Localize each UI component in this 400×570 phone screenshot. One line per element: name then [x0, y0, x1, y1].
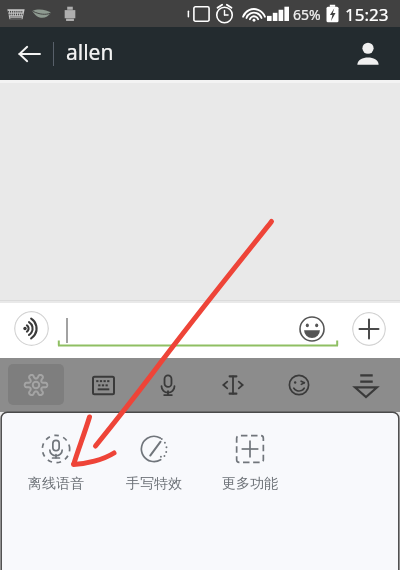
- button[interactable]: 离线语音: [12, 434, 100, 506]
- button[interactable]: Voice input: [141, 360, 195, 410]
- button[interactable]: Keyboard: [76, 360, 130, 410]
- button[interactable]: More options: [352, 312, 386, 346]
- button[interactable]: 手写特效: [110, 434, 198, 506]
- staticText: allen: [66, 38, 114, 67]
- button[interactable]: Emoji: [297, 314, 327, 344]
- button[interactable]: 更多功能: [206, 434, 294, 506]
- button[interactable]: Voice message: [14, 311, 49, 346]
- staticText: 15:23: [345, 3, 389, 26]
- button[interactable]: Input settings: [8, 364, 64, 405]
- staticText: 手写特效: [126, 475, 182, 493]
- staticText: 65%: [293, 5, 321, 24]
- button[interactable]: Emoticons: [272, 360, 326, 410]
- button[interactable]: Move cursor: [206, 360, 260, 410]
- button[interactable]: Hide keyboard: [339, 360, 393, 410]
- button[interactable]: Back: [7, 32, 51, 76]
- staticText: 更多功能: [222, 475, 278, 493]
- staticText: 离线语音: [28, 475, 84, 493]
- button[interactable]: Contact profile: [345, 31, 391, 77]
